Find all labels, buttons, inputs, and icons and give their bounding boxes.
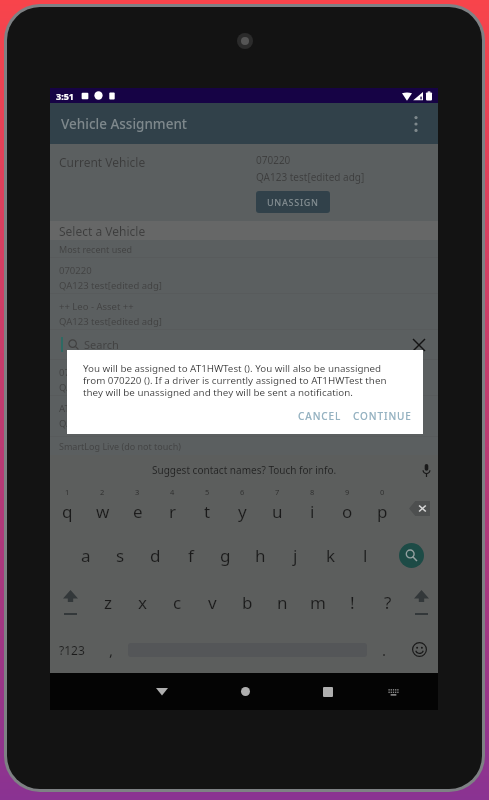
staticText: ++ Leo - Asset ++ [59, 300, 134, 313]
staticText: n [277, 591, 288, 614]
staticText: b [242, 591, 253, 614]
button[interactable]: ! [335, 579, 370, 626]
staticText: CONTINUE [353, 409, 412, 423]
button[interactable]: d [138, 532, 173, 579]
button[interactable]: l [348, 532, 383, 579]
staticText: Select a Vehicle [59, 223, 146, 239]
button[interactable]: AT1HWTest [50, 395, 438, 431]
staticText: o [342, 500, 353, 523]
button[interactable]: g [208, 532, 243, 579]
staticText: 3:51 [56, 90, 74, 102]
staticText: ?123 [59, 642, 85, 658]
staticText: UNASSIGN [267, 196, 319, 208]
button[interactable]: s [103, 532, 138, 579]
button[interactable]: Switch keyboard [373, 673, 413, 710]
staticText: 1 [65, 487, 70, 497]
staticText: 6 [240, 487, 245, 497]
staticText: ! [350, 591, 355, 614]
staticText: QA123 test[edited adg] [59, 315, 162, 328]
staticText: QA123 test[edited adg] [59, 381, 162, 394]
button[interactable]: 5 [190, 485, 225, 532]
button[interactable]: h [243, 532, 278, 579]
button[interactable]: 4 [155, 485, 190, 532]
staticText: 070220 [59, 264, 92, 277]
button[interactable]: Clear search [409, 335, 429, 355]
button[interactable]: Voice input [414, 458, 438, 482]
staticText: i [310, 500, 315, 523]
staticText: 4 [170, 487, 175, 497]
button[interactable]: m [300, 579, 335, 626]
staticText: x [138, 591, 147, 614]
button[interactable]: 3 [120, 485, 155, 532]
staticText: 9 [345, 487, 350, 497]
button[interactable]: 070220 [50, 257, 438, 293]
button[interactable]: z [90, 579, 125, 626]
button[interactable]: Recents [308, 673, 348, 710]
button[interactable]: a [68, 532, 103, 579]
staticText: d [150, 544, 161, 567]
staticText: 8 [310, 487, 315, 497]
staticText: z [104, 591, 112, 614]
button[interactable]: c [160, 579, 195, 626]
button[interactable]: 7 [260, 485, 295, 532]
button[interactable]: 6 [225, 485, 260, 532]
button[interactable]: 2 [85, 485, 120, 532]
staticText: a [81, 544, 91, 567]
button[interactable]: ? [370, 579, 405, 626]
staticText: e [133, 500, 143, 523]
button[interactable]: Space [128, 626, 367, 673]
button[interactable]: n [265, 579, 300, 626]
staticText: t [204, 500, 211, 523]
button[interactable]: ++ Leo - Asset ++ [50, 293, 438, 329]
button[interactable]: k [313, 532, 348, 579]
button[interactable]: j [278, 532, 313, 579]
button[interactable]: 8 [295, 485, 330, 532]
staticText: 2 [100, 487, 105, 497]
staticText: j [293, 544, 298, 567]
button[interactable]: CONTINUE [343, 405, 417, 427]
button[interactable]: Home [225, 673, 265, 710]
button[interactable]: x [125, 579, 160, 626]
staticText: Suggest contact names? Touch for info. [152, 463, 337, 477]
button[interactable]: 1 [50, 485, 85, 532]
staticText: 7 [275, 487, 280, 497]
button[interactable]: v [195, 579, 230, 626]
staticText: Vehicle Assignment [61, 115, 188, 133]
staticText: u [272, 500, 283, 523]
staticText: Search [84, 337, 119, 352]
button[interactable]: Emoji [401, 626, 438, 673]
button[interactable]: ?123 [50, 626, 94, 673]
button[interactable]: Shift [50, 579, 90, 626]
staticText: w [96, 500, 110, 523]
staticText: 5 [205, 487, 210, 497]
button[interactable]: More options [399, 107, 433, 141]
button[interactable]: 9 [330, 485, 365, 532]
button[interactable]: f [173, 532, 208, 579]
staticText: ? [384, 591, 392, 614]
staticText: m [310, 591, 326, 614]
staticText: You will be assigned to AT1HWTest (). Yo… [83, 362, 387, 399]
staticText: , [109, 640, 114, 660]
staticText: c [173, 591, 182, 614]
button[interactable]: 0 [365, 485, 400, 532]
button[interactable]: Search [383, 532, 438, 579]
staticText: 0 [380, 487, 385, 497]
button[interactable]: CANCEL [290, 405, 343, 427]
staticText: Current Vehicle [59, 154, 146, 170]
staticText: g [220, 544, 231, 567]
button[interactable]: Shift [405, 579, 438, 626]
staticText: k [326, 544, 336, 567]
button[interactable]: 070220 [50, 359, 438, 395]
button[interactable]: Back [142, 673, 182, 710]
button[interactable]: b [230, 579, 265, 626]
staticText: h [255, 544, 266, 567]
staticText: 070220 [59, 366, 92, 379]
button[interactable]: Backspace [400, 485, 438, 532]
button[interactable]: UNASSIGN [256, 191, 330, 213]
staticText: l [363, 544, 368, 567]
staticText: r [169, 500, 177, 523]
staticText: f [188, 544, 194, 567]
staticText: 3 [135, 487, 140, 497]
